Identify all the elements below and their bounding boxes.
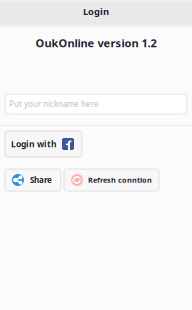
button[interactable]: Share [5, 169, 61, 191]
staticText: OukOnline version 1.2 [35, 35, 156, 51]
staticText: Put your nickname here [9, 99, 99, 109]
button[interactable]: Refresh conntion [64, 169, 159, 191]
staticText: Login with [11, 138, 57, 150]
button[interactable]: Login with [5, 131, 82, 157]
staticText: Login [83, 5, 109, 18]
staticText: Refresh conntion [88, 175, 152, 185]
staticText: Share [30, 175, 52, 185]
